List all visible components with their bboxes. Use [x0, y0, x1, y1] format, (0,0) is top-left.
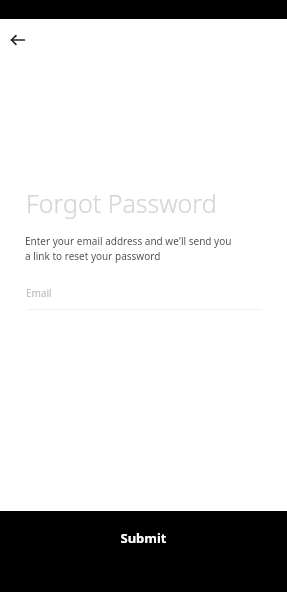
button[interactable]: Email [0, 286, 287, 310]
staticText: Forgot Password [26, 186, 217, 220]
staticText: Email [26, 286, 52, 300]
button[interactable]: Submit [0, 511, 287, 592]
button[interactable]: Back [6, 28, 30, 52]
staticText: Submit [0, 529, 287, 547]
staticText: Enter your email address and we'll send … [25, 234, 232, 263]
